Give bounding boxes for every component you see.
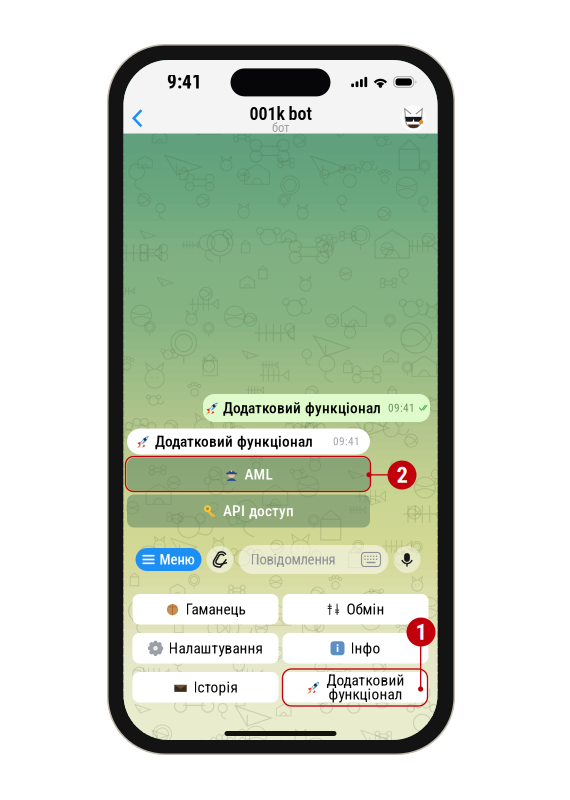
staticText: бот — [272, 120, 289, 135]
staticText: Додатковий — [326, 671, 404, 689]
staticText: 9:41 — [167, 71, 202, 93]
button[interactable]: Back — [123, 98, 157, 133]
staticText: Обмін — [346, 600, 384, 618]
button[interactable]: AML — [127, 458, 370, 491]
staticText: 001k bot — [249, 103, 311, 124]
staticText: Меню — [159, 551, 194, 568]
staticText: Налаштування — [168, 639, 262, 657]
staticText: Історія — [193, 678, 237, 696]
staticText: Повідомлення — [250, 551, 335, 568]
button[interactable]: API доступ — [127, 494, 370, 527]
staticText: 1 — [415, 619, 426, 645]
button[interactable]: Додатковий — [282, 672, 428, 702]
button[interactable]: Меню — [135, 548, 201, 571]
staticText: Гаманець — [185, 600, 245, 618]
button[interactable]: Attach file — [206, 546, 233, 573]
staticText: 09:41 — [388, 401, 415, 415]
button[interactable]: Record voice message — [393, 546, 420, 573]
button[interactable]: Історія — [132, 672, 278, 702]
button[interactable]: Обмін — [282, 594, 428, 624]
staticText: Додатковий функціонал — [223, 399, 381, 417]
staticText: Інфо — [350, 639, 380, 657]
button[interactable]: Гаманець — [132, 594, 278, 624]
staticText: API доступ — [223, 502, 294, 520]
staticText: Додатковий функціонал — [155, 432, 313, 450]
button[interactable]: Інфо — [282, 633, 428, 663]
button[interactable]: Налаштування — [132, 633, 278, 663]
button[interactable]: Повідомлення — [238, 545, 388, 574]
staticText: 2 — [396, 462, 407, 488]
staticText: AML — [244, 465, 272, 483]
staticText: 09:41 — [333, 435, 360, 448]
staticText: функціонал — [328, 685, 402, 703]
button[interactable]: Chat info — [400, 99, 437, 133]
